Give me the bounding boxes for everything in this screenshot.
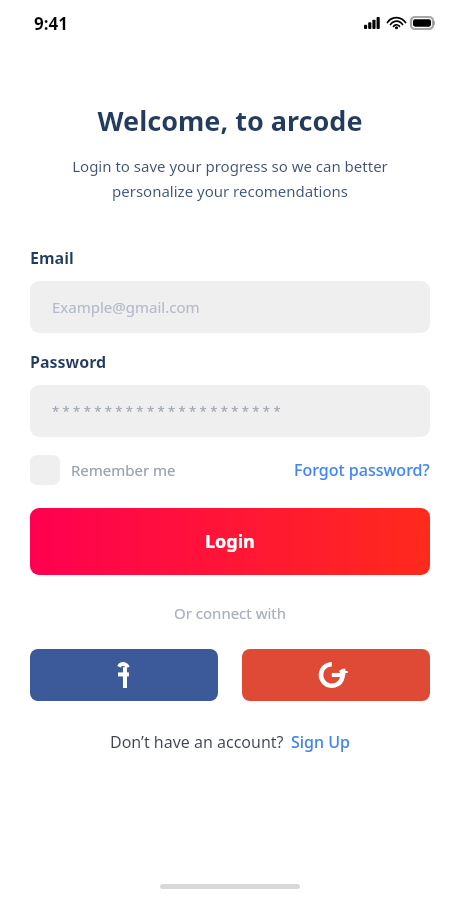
staticText: Login [205,529,255,554]
staticText: * * * * * * * * * * * * * * * * * * * * … [52,402,281,420]
staticText: Password [30,351,107,373]
staticText: Example@gmail.com [52,297,200,317]
button[interactable]: Sign in with Facebook [30,649,218,701]
staticText: Sign Up [291,731,350,753]
staticText: Or connect with [30,603,430,623]
button[interactable]: Sign Up [291,731,350,753]
staticText: Welcome, to arcode [0,102,460,139]
staticText: 9:41 [34,12,68,35]
button[interactable]: Remember me [30,455,180,485]
button[interactable]: Login [30,508,430,575]
staticText: Login to save your progress so we can be… [28,156,432,201]
staticText: Don’t have an account? [110,731,284,753]
staticText: Remember me [71,460,176,480]
button[interactable]: Sign in with Google Plus [242,649,430,701]
button[interactable]: * * * * * * * * * * * * * * * * * * * * … [30,385,430,437]
button[interactable]: Example@gmail.com [30,281,430,333]
staticText: Email [30,247,74,269]
staticText: Forgot password? [294,459,430,481]
button[interactable]: Forgot password? [294,459,430,481]
